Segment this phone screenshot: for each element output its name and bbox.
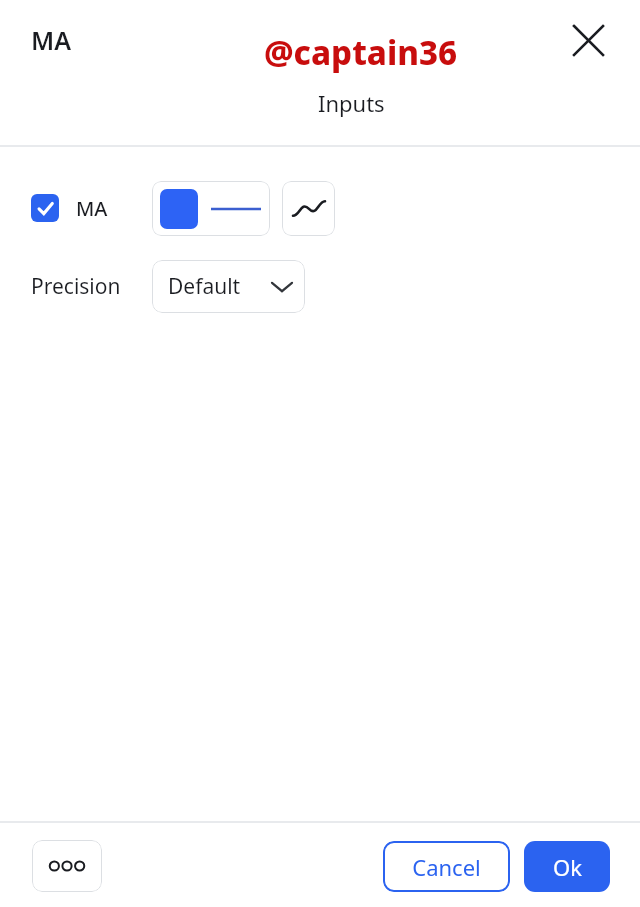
staticText: Cancel [412,852,481,882]
button[interactable]: Ok [524,841,610,892]
staticText: MA [76,195,108,222]
staticText: @captain36 [264,30,458,75]
staticText: Default [168,272,241,301]
staticText: Inputs [318,88,385,118]
staticText: Precision [31,272,121,301]
staticText: Ok [553,852,582,882]
button[interactable]: Close [563,15,613,65]
button[interactable]: Inputs [31,88,640,134]
button[interactable]: Line colour and style [152,181,270,236]
button[interactable]: MA [31,194,112,222]
button[interactable]: Default [152,260,305,313]
staticText: MA [31,23,72,57]
button[interactable]: Cancel [383,841,510,892]
button[interactable]: Line smoothing [282,181,335,236]
button[interactable]: More options [32,840,102,892]
